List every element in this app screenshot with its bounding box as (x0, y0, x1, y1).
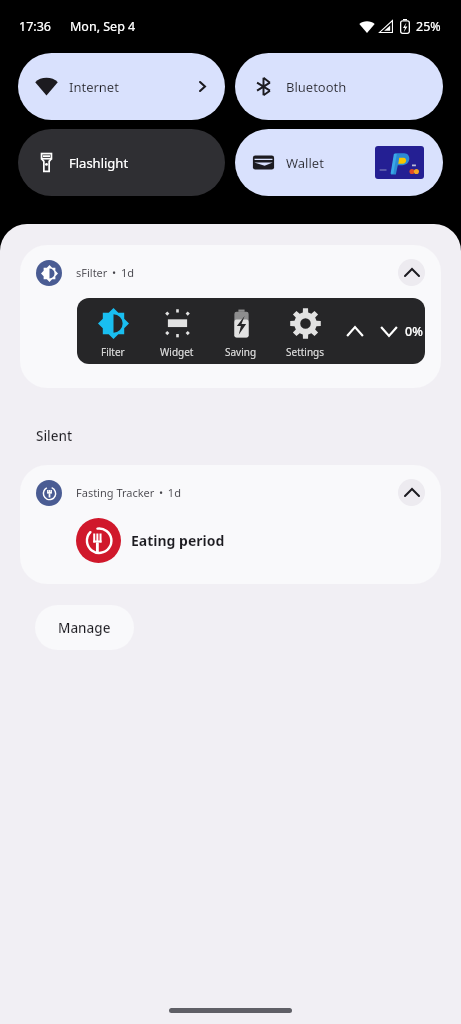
button[interactable]: Fasting Tracker notification (20, 465, 441, 584)
button[interactable]: Widget (145, 298, 209, 364)
staticText: Eating period (131, 531, 225, 550)
staticText: Fasting Tracker • 1d (76, 485, 181, 500)
button[interactable]: Bluetooth (235, 53, 443, 120)
staticText: 25% (416, 18, 441, 35)
button[interactable]: Internet (18, 53, 225, 120)
staticText: Internet (69, 78, 119, 96)
staticText: Filter (101, 345, 125, 359)
staticText: Manage (58, 619, 111, 637)
button[interactable]: Manage (35, 605, 134, 650)
button[interactable]: Collapse (398, 479, 425, 506)
staticText: Silent (36, 427, 73, 445)
staticText: Flashlight (69, 154, 129, 172)
staticText: Saving (225, 345, 257, 359)
staticText: Widget (160, 345, 194, 359)
button[interactable]: Decrease (376, 318, 402, 344)
button[interactable]: Saving (209, 298, 273, 364)
button[interactable]: Collapse (398, 259, 425, 286)
staticText: Wallet (286, 154, 324, 172)
button[interactable]: Flashlight (18, 129, 225, 196)
staticText: 0% (405, 323, 423, 340)
button[interactable]: Wallet (235, 129, 443, 196)
staticText: Settings (286, 345, 325, 359)
staticText: 17:36 (19, 18, 51, 35)
staticText: Bluetooth (286, 78, 347, 96)
button[interactable]: Filter (81, 298, 145, 364)
staticText: Mon, Sep 4 (70, 18, 136, 35)
button[interactable]: Settings (273, 298, 337, 364)
button[interactable]: Increase (342, 318, 368, 344)
button[interactable]: sFilter notification (20, 245, 441, 388)
staticText: sFilter • 1d (76, 265, 134, 280)
